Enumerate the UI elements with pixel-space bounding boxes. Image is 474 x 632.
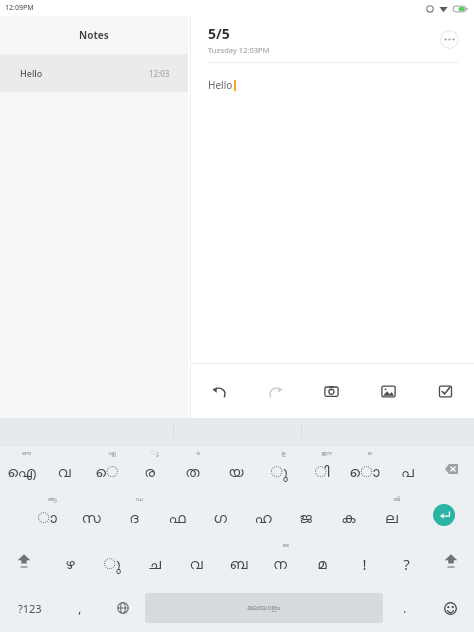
button[interactable]: Emoji [426,584,474,632]
staticText: ച [148,557,161,572]
staticText: ഗ [213,511,227,526]
staticText: ഉ [281,450,286,456]
staticText: . [403,599,407,617]
button[interactable]: Insert image [360,364,417,418]
button[interactable]: , [60,584,100,632]
button[interactable]: ഴ [48,538,91,584]
button[interactable]: ?123 [0,584,60,632]
staticText: ? [403,554,410,574]
staticText: ! [362,554,367,574]
button[interactable]: ു [91,538,133,584]
button[interactable]: സ [69,492,112,538]
staticText: ി [314,465,330,480]
staticText: ഈ [321,450,332,456]
staticText: ത [185,465,200,480]
staticText: ?123 [18,601,42,616]
staticText: െ [95,465,118,480]
button[interactable]: Redo [247,364,303,418]
staticText: ാ [37,511,57,526]
staticText: യ [228,465,244,480]
staticText: ു [270,465,288,480]
button[interactable]: Backspace [429,446,474,492]
staticText: Hello [20,67,43,79]
staticText: , [78,599,82,617]
button[interactable]: മലയാളം [145,593,383,623]
button[interactable]: Enter [433,504,455,526]
button[interactable]: Checklist [417,364,474,418]
button[interactable]: ! [343,538,385,584]
button[interactable]: More options [440,30,459,49]
button[interactable]: മ [301,538,343,584]
button[interactable]: ഉ [257,446,300,492]
staticText: Notes [79,28,109,42]
button[interactable]: Change language [100,584,145,632]
button[interactable]: യ [214,446,257,492]
button[interactable]: ഏ [85,446,128,492]
staticText: ജ [299,511,312,526]
staticText: ഹ [254,511,272,526]
staticText: മ [317,557,327,572]
staticText: ക [341,511,356,526]
staticText: ല [385,511,398,526]
staticText: ട [196,450,200,456]
staticText: Hello [208,78,233,92]
button[interactable]: ബ [217,538,259,584]
staticText: ൃ [151,450,159,456]
button[interactable]: ഫ [155,492,198,538]
button[interactable]: ട [171,446,214,492]
staticText: ഡ [135,496,143,502]
button[interactable]: ജ [284,492,327,538]
button[interactable]: ച [133,538,175,584]
button[interactable]: Hello [0,54,188,92]
button[interactable]: പ [386,446,429,492]
staticText: 5/5 [208,24,230,43]
button[interactable]: ൃ [128,446,171,492]
button[interactable]: ? [385,538,427,584]
staticText: ന [273,557,287,572]
button[interactable]: ആ [25,492,69,538]
staticText: ഫ [168,511,186,526]
button[interactable]: ക [327,492,370,538]
staticText: ൽ [393,496,400,502]
staticText: വ [189,557,203,572]
staticText: ഔ [22,450,31,456]
button[interactable]: Camera [303,364,360,418]
staticText: ഴ [65,557,75,572]
button[interactable]: . [383,584,426,632]
staticText: Tuesday 12:03PM [208,45,270,55]
staticText: ദ [129,511,139,526]
staticText: ആ [47,496,57,502]
staticText: ഒ [367,450,372,456]
staticText: ങ [282,542,289,548]
staticText: സ [81,511,101,526]
button[interactable]: ങ [259,538,301,584]
staticText: പ [401,465,414,480]
staticText: ബ [229,557,248,572]
button[interactable]: വ [42,446,85,492]
button[interactable]: ഡ [112,492,155,538]
button[interactable]: ഒ [343,446,386,492]
button[interactable]: Shift [0,538,48,584]
staticText: ൊ [349,465,380,480]
staticText: ര [144,465,155,480]
staticText: 12:09PM [5,3,34,13]
staticText: ഐ [7,465,36,480]
staticText: ു [103,557,121,572]
staticText: വ [57,465,71,480]
button[interactable]: ൽ [370,492,413,538]
button[interactable]: ഗ [198,492,241,538]
button[interactable]: ഈ [300,446,343,492]
button[interactable]: ഔ [0,446,42,492]
button[interactable]: Undo [191,364,247,418]
staticText: മലയാളം [247,604,281,612]
button[interactable]: Shift [427,538,474,584]
staticText: 12:03 [149,68,170,79]
button[interactable]: വ [175,538,217,584]
button[interactable]: ഹ [241,492,284,538]
staticText: ഏ [108,450,116,456]
